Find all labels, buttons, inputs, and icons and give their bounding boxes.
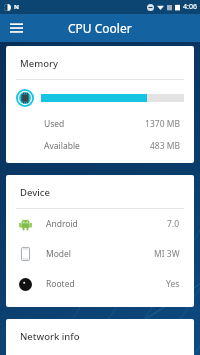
staticText: Memory <box>20 57 59 70</box>
staticText: 4:06 <box>183 2 197 12</box>
staticText: 1370 MB <box>145 118 180 130</box>
staticText: Model <box>46 248 72 260</box>
staticText: CPU Cooler <box>68 20 132 36</box>
staticText: 483 MB <box>149 140 180 152</box>
staticText: MI 3W <box>154 248 180 260</box>
staticText: Rooted <box>46 278 75 290</box>
staticText: Used <box>44 118 65 130</box>
button[interactable]: Available <box>6 135 194 163</box>
button[interactable]: Rooted <box>6 269 194 307</box>
staticText: Available <box>44 140 80 152</box>
staticText: Network info <box>20 330 80 343</box>
staticText: N <box>14 3 19 11</box>
button[interactable]: Used <box>6 113 194 135</box>
staticText: 7.0 <box>167 218 180 230</box>
staticText: Device <box>20 186 50 199</box>
staticText: Yes <box>166 278 180 290</box>
staticText: Android <box>46 218 78 230</box>
button[interactable]: Model <box>6 239 194 269</box>
button[interactable]: Open navigation menu <box>6 18 26 38</box>
button[interactable]: Android <box>6 209 194 239</box>
